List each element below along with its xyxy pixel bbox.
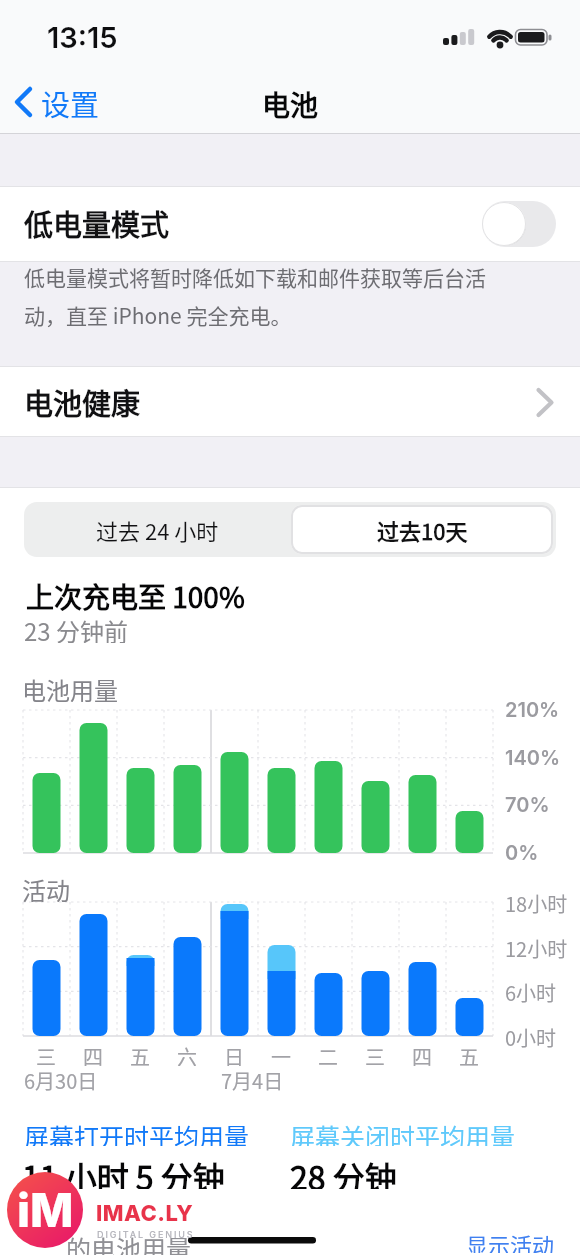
staticText: 上次充电至 100%: [26, 576, 245, 612]
staticText: 18小时: [505, 889, 568, 915]
staticText: 6月30日: [24, 1066, 98, 1092]
staticText: 0%: [505, 841, 539, 865]
staticText: 7月4日: [221, 1066, 284, 1092]
staticText: 23 分钟前: [24, 613, 129, 643]
staticText: 210%: [505, 698, 560, 722]
staticText: 活动: [22, 872, 70, 902]
staticText: 六: [177, 1042, 197, 1066]
staticText: IMAC.LY: [96, 1200, 194, 1227]
staticText: 140%: [505, 746, 561, 770]
button[interactable]: 过去 24 小时: [24, 502, 290, 557]
staticText: DIGITAL GENIUS: [97, 1229, 195, 1240]
staticText: 设置: [41, 82, 100, 124]
staticText: 电池健康: [24, 381, 141, 423]
staticText: 五: [459, 1042, 479, 1066]
staticText: 一: [271, 1042, 291, 1066]
staticText: 70%: [505, 793, 550, 817]
staticText: 屏幕关闭时平均用量: [290, 1118, 516, 1146]
button[interactable]: 显示活动: [460, 1228, 560, 1253]
staticText: 过去 24 小时: [96, 514, 219, 546]
staticText: 低电量模式将暂时降低如下载和邮件获取等后台活 动，直至 iPhone 完全充电。: [24, 262, 486, 330]
staticText: 13:15: [47, 20, 118, 54]
staticText: 12小时: [505, 934, 568, 960]
button[interactable]: 低电量模式: [0, 187, 580, 261]
staticText: 日: [224, 1042, 244, 1066]
button[interactable]: 设置: [10, 82, 120, 124]
staticText: 11 小时 5 分钟: [22, 1153, 225, 1189]
staticText: 6小时: [505, 978, 557, 1004]
staticText: 的电池用量: [66, 1230, 192, 1255]
button[interactable]: 过去10天: [291, 505, 553, 554]
staticText: 0小时: [505, 1023, 557, 1049]
staticText: 三: [365, 1042, 385, 1066]
staticText: 电池: [262, 84, 319, 120]
staticText: 28 分钟: [290, 1153, 397, 1189]
staticText: 显示活动: [466, 1228, 555, 1253]
staticText: 过去10天: [377, 514, 468, 546]
button[interactable]: 电池健康: [0, 367, 580, 436]
staticText: 电池用量: [22, 672, 118, 702]
staticText: 屏幕打开时平均用量: [24, 1118, 250, 1146]
staticText: 五: [130, 1042, 150, 1066]
staticText: 四: [412, 1042, 432, 1066]
staticText: 四: [83, 1042, 103, 1066]
staticText: 二: [318, 1042, 338, 1066]
staticText: 三: [36, 1042, 56, 1066]
staticText: iM: [17, 1182, 74, 1238]
staticText: 低电量模式: [24, 202, 170, 244]
